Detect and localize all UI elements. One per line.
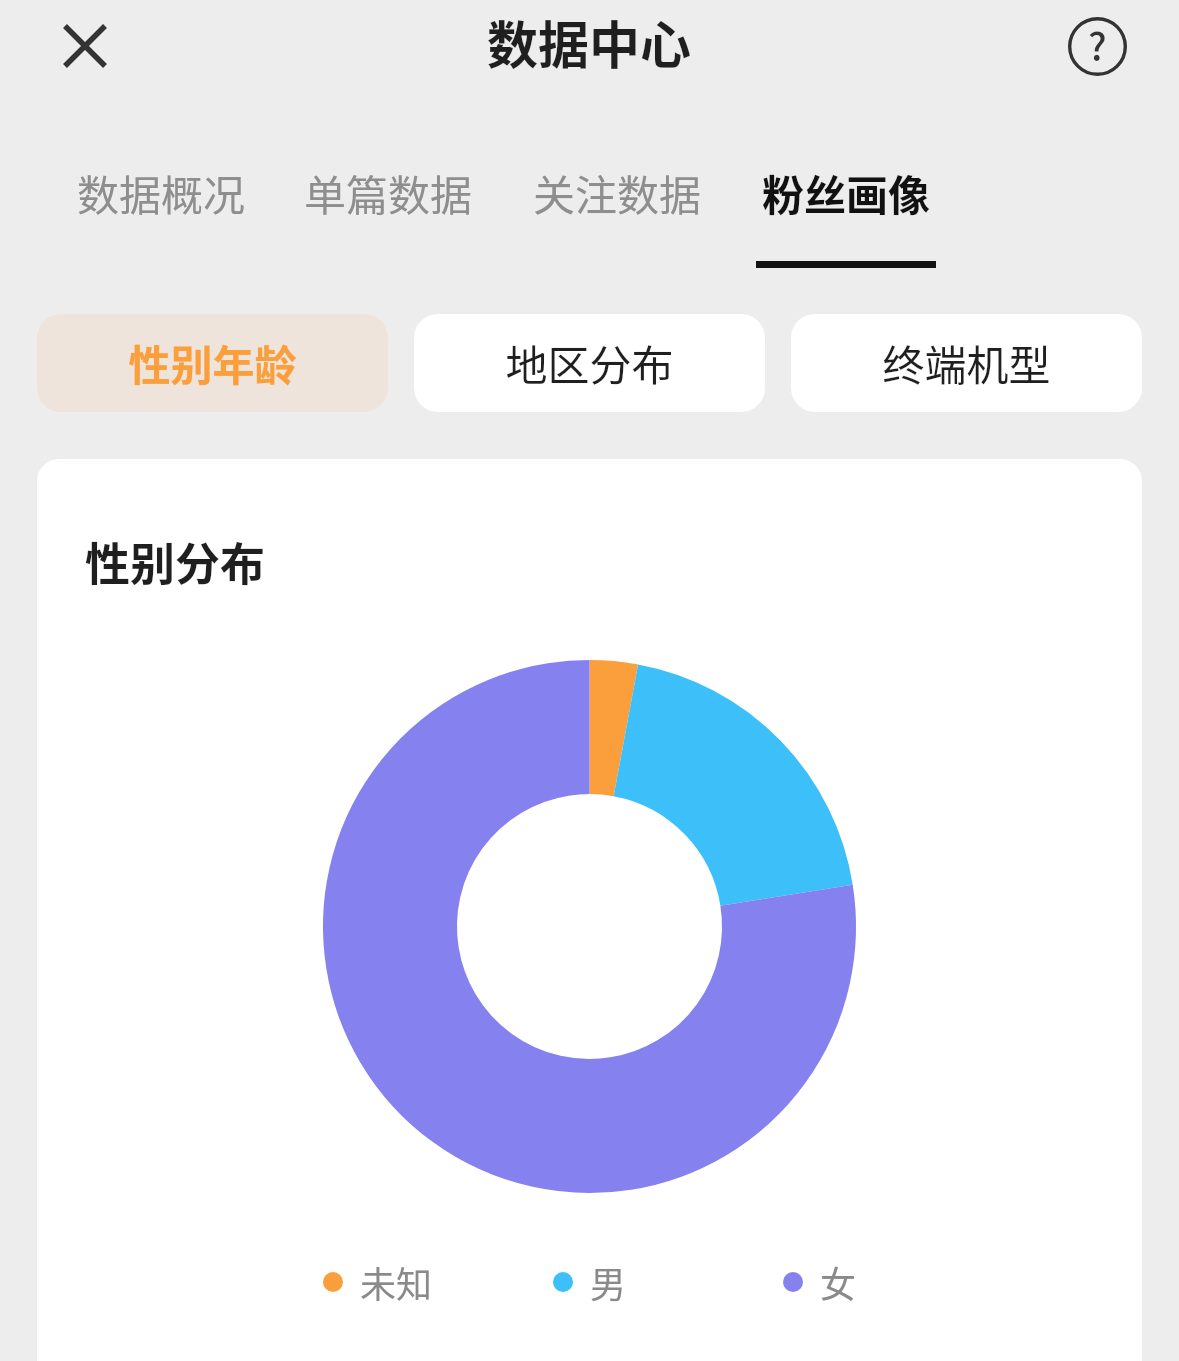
button[interactable]: 性别年龄 (37, 314, 388, 412)
staticText: 性别分布 (85, 529, 266, 594)
staticText: 女 (820, 1256, 857, 1308)
button[interactable]: Close (49, 10, 121, 82)
staticText: 男 (590, 1256, 627, 1308)
button[interactable]: 未知 (323, 1256, 433, 1308)
button[interactable]: 单篇数据 (304, 162, 472, 282)
button[interactable]: 终端机型 (791, 314, 1142, 412)
button[interactable]: 女 (783, 1256, 857, 1308)
staticText: 终端机型 (882, 332, 1051, 393)
staticText: 地区分布 (505, 332, 674, 393)
button[interactable]: 关注数据 (533, 162, 701, 282)
staticText: 性别年龄 (128, 332, 297, 393)
staticText: 数据中心 (487, 5, 692, 79)
button[interactable]: Help (1061, 10, 1133, 82)
staticText: 数据概况 (77, 162, 245, 223)
staticText: 未知 (360, 1256, 433, 1308)
button[interactable]: 男 (553, 1256, 627, 1308)
staticText: 粉丝画像 (762, 162, 930, 223)
staticText: 关注数据 (533, 162, 701, 223)
button[interactable]: 地区分布 (414, 314, 765, 412)
staticText: ? (1088, 17, 1107, 72)
button[interactable]: 粉丝画像 (762, 162, 930, 282)
staticText: 单篇数据 (304, 162, 472, 223)
button[interactable]: 数据概况 (77, 162, 245, 282)
